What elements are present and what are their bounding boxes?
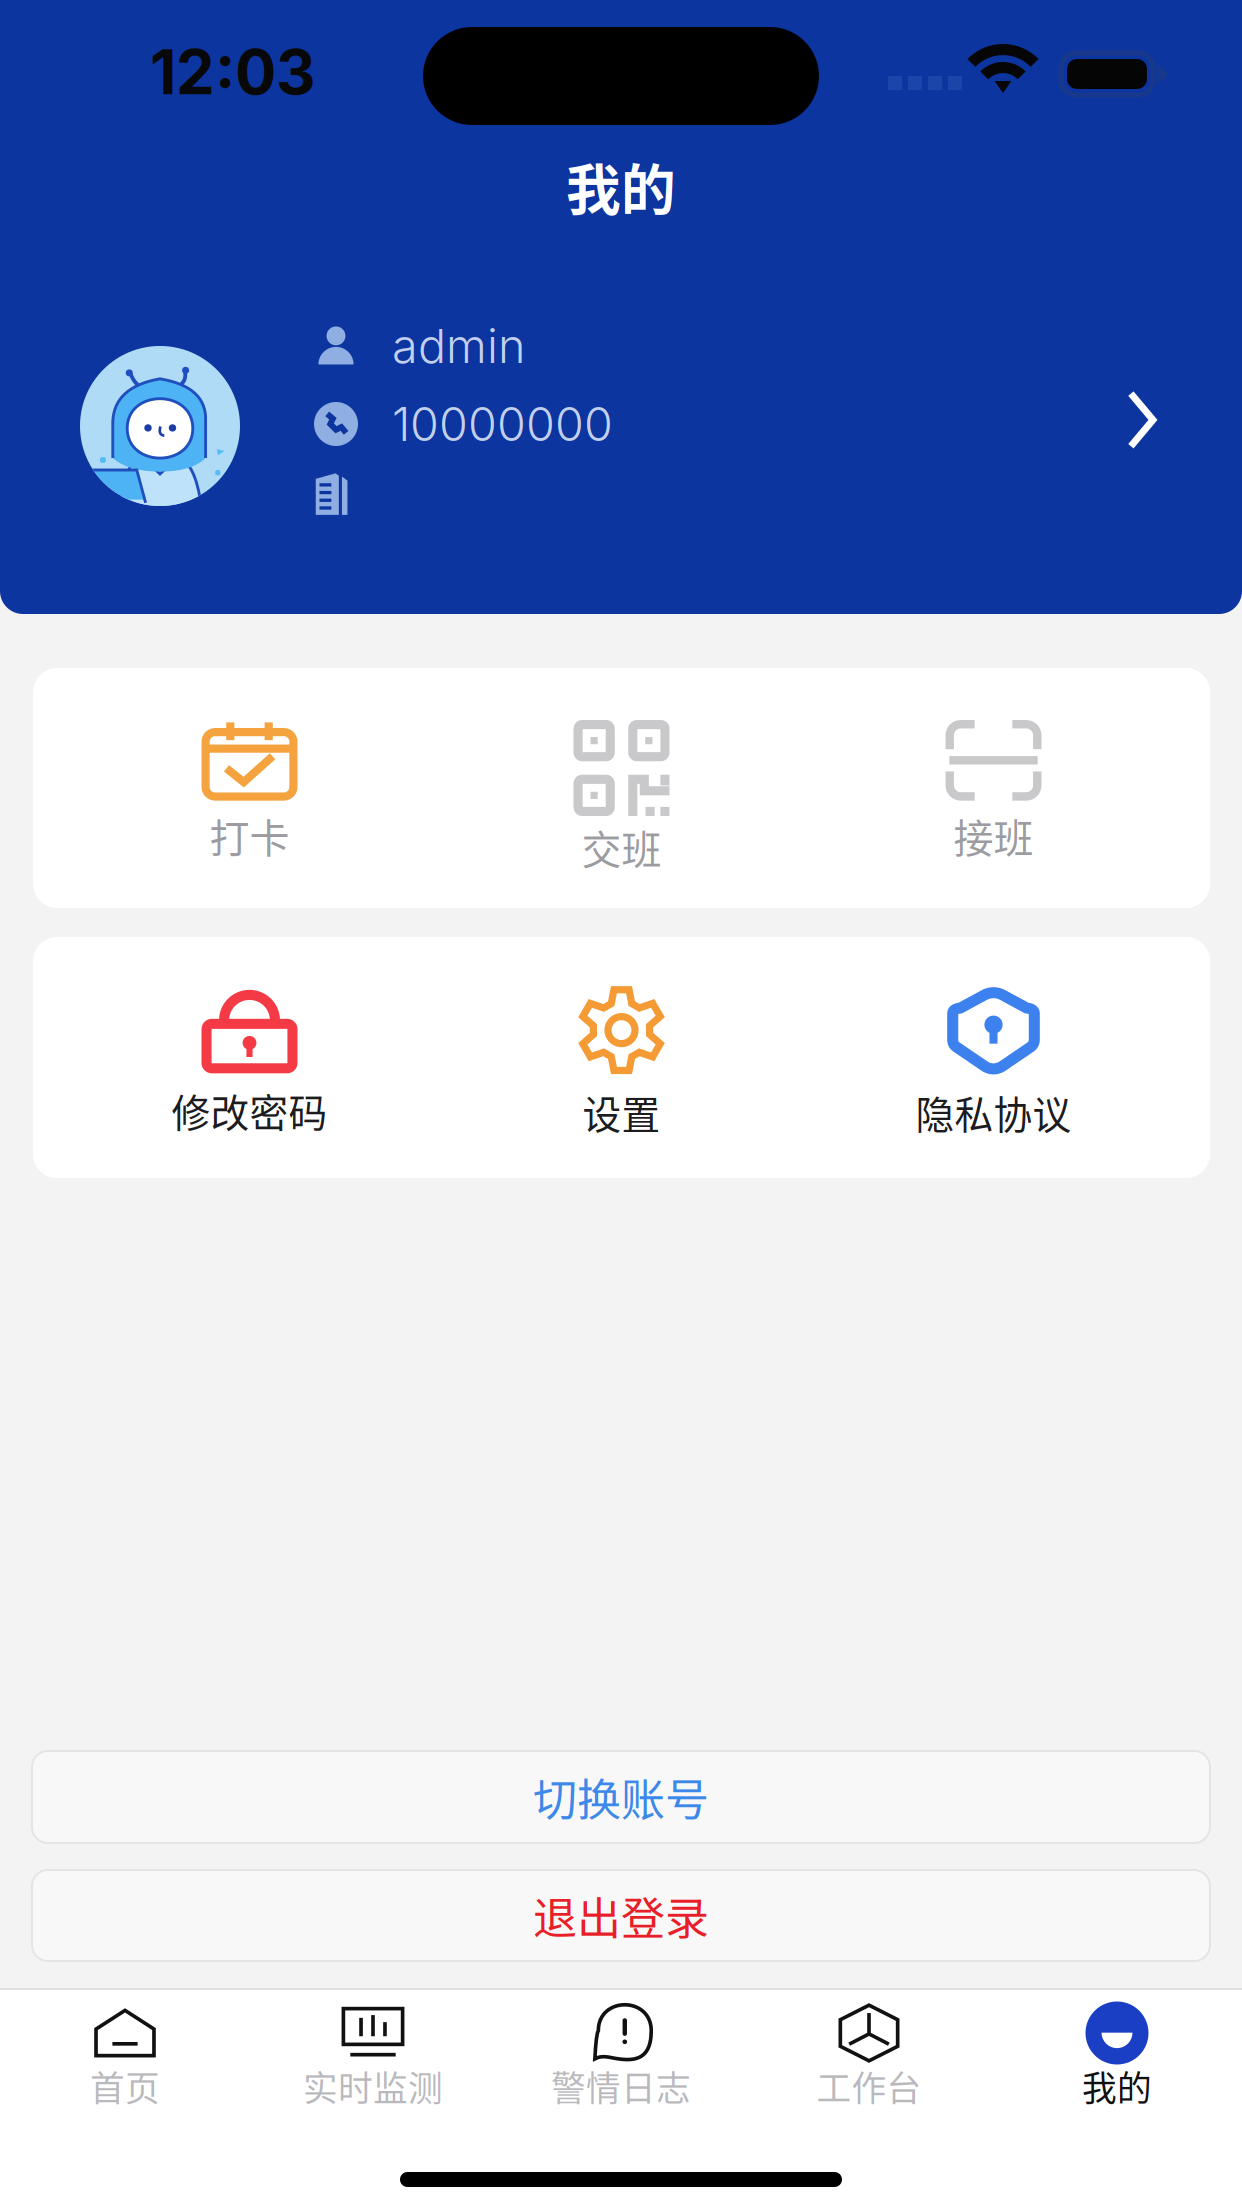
staticText: 工作台 (816, 2061, 921, 2111)
staticText: 12:03 (150, 35, 316, 109)
staticText: 交班 (581, 818, 661, 876)
staticText: 设置 (582, 1084, 660, 1140)
button[interactable]: 警情日志 (497, 2007, 745, 2137)
button[interactable]: 工作台 (745, 2007, 993, 2137)
staticText: admin (392, 318, 525, 374)
staticText: 切换账号 (533, 1765, 709, 1829)
button[interactable]: 退出登录 (32, 1870, 1210, 1961)
button[interactable]: 打卡 (63, 720, 435, 960)
staticText: 实时监测 (303, 2061, 443, 2111)
button[interactable]: 修改密码 (63, 985, 435, 1225)
button[interactable]: 设置 (435, 985, 807, 1225)
staticText: 警情日志 (551, 2061, 691, 2111)
button[interactable]: 个人资料 admin 10000000 (0, 298, 1242, 612)
staticText: 10000000 (392, 396, 613, 452)
staticText: 打卡 (209, 807, 289, 864)
button[interactable]: 首页 (1, 2007, 249, 2137)
button[interactable]: 隐私协议 (807, 985, 1179, 1225)
staticText: 修改密码 (171, 1082, 327, 1138)
staticText: 我的 (566, 146, 676, 226)
button[interactable]: 我的 (993, 2007, 1241, 2137)
staticText: 隐私协议 (915, 1084, 1071, 1140)
button[interactable]: 交班 (435, 720, 807, 960)
button[interactable]: 接班 (807, 720, 1179, 960)
button[interactable]: 切换账号 (32, 1751, 1210, 1843)
staticText: 接班 (953, 807, 1033, 864)
staticText: 退出登录 (533, 1884, 709, 1947)
staticText: 我的 (1082, 2061, 1152, 2111)
button[interactable]: 实时监测 (249, 2007, 497, 2137)
staticText: 首页 (90, 2061, 160, 2111)
